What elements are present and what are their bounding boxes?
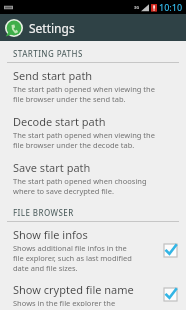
staticText: Show crypted file name xyxy=(13,282,134,297)
staticText: Send start path xyxy=(13,68,93,83)
staticText: The start path opened when viewing the f… xyxy=(13,84,155,104)
staticText: Show file infos xyxy=(13,227,88,242)
staticText: The start path opened when viewing the f… xyxy=(13,130,155,150)
button[interactable]: Decode start path xyxy=(0,109,186,155)
staticText: 10:10 xyxy=(159,1,183,13)
button[interactable]: Show file infos xyxy=(0,222,186,277)
button[interactable]: Toggle setting xyxy=(163,287,178,302)
staticText: Save start path xyxy=(13,160,91,175)
staticText: Shows in the file explorer the name of t… xyxy=(13,298,130,306)
button[interactable]: Save start path xyxy=(0,155,186,201)
staticText: 3G xyxy=(134,5,140,10)
button[interactable]: Toggle setting xyxy=(163,243,178,258)
button[interactable]: Show crypted file name xyxy=(0,277,186,310)
other: App icon xyxy=(5,19,23,37)
staticText: Settings xyxy=(29,20,75,36)
staticText: Decode start path xyxy=(13,114,106,129)
staticText: The start path opened when choosing wher… xyxy=(13,176,147,196)
button[interactable]: Send start path xyxy=(0,63,186,109)
staticText: STARTING PATHS xyxy=(13,48,83,59)
button[interactable]: App icon xyxy=(0,14,186,41)
staticText: Shows additional file infos in the file … xyxy=(13,243,132,273)
staticText: FILE BROWSER xyxy=(13,207,74,218)
